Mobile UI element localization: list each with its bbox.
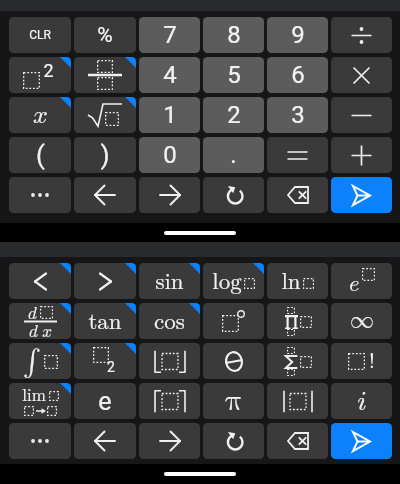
button[interactable]: 9 (267, 17, 328, 53)
staticText: 5 (227, 61, 241, 89)
button[interactable]: Equals (267, 137, 328, 173)
button[interactable]: 7 (139, 17, 200, 53)
button[interactable]: 8 (203, 17, 264, 53)
button[interactable]: Right (139, 177, 200, 213)
button[interactable]: 5 (203, 57, 264, 93)
staticText: 4 (163, 61, 177, 89)
staticText: ∞ (350, 309, 374, 333)
staticText: 6 (291, 61, 305, 89)
staticText: 3 (291, 101, 305, 129)
staticText: 𝑥 (42, 323, 52, 339)
button[interactable]: Fraction (74, 57, 136, 93)
button[interactable]: Integral (9, 343, 71, 379)
staticText: ln (281, 270, 301, 293)
staticText: ∫ (23, 348, 41, 375)
button[interactable]: cos (139, 303, 200, 339)
button[interactable]: Square root (74, 97, 136, 133)
button[interactable]: Backspace (267, 423, 328, 459)
staticText: π (225, 386, 243, 416)
staticText: 9 (291, 21, 305, 49)
button[interactable]: CLR (9, 17, 71, 53)
button[interactable]: sin (139, 263, 200, 299)
button[interactable]: Subscript (74, 343, 136, 379)
staticText: cos (154, 310, 185, 333)
button[interactable]: Send (331, 423, 392, 459)
button[interactable]: Limit (9, 383, 71, 419)
button[interactable]: Undo (203, 177, 264, 213)
button[interactable]: ( (9, 137, 71, 173)
staticText: 𝑒 (349, 273, 360, 295)
staticText: CLR (29, 28, 51, 42)
button[interactable]: Logarithm (203, 263, 264, 299)
staticText: 0 (163, 141, 177, 169)
button[interactable]: Natural log (267, 263, 328, 299)
button[interactable]: . (203, 137, 264, 173)
button[interactable]: More (9, 423, 71, 459)
button[interactable]: 4 (139, 57, 200, 93)
button[interactable]: Floor (139, 343, 200, 379)
button[interactable]: Left (74, 177, 136, 213)
staticText: 2 (227, 101, 241, 129)
staticText: 𝑑 (29, 323, 38, 339)
button[interactable]: Undo (203, 423, 264, 459)
staticText: % (97, 23, 113, 48)
staticText: log (212, 270, 242, 293)
button[interactable]: Ceiling (139, 383, 200, 419)
button[interactable]: 3 (267, 97, 328, 133)
button[interactable]: Square (9, 57, 71, 93)
button[interactable]: e (74, 383, 136, 419)
staticText: 𝑖 (357, 387, 367, 415)
staticText: 𝑥 (33, 102, 48, 128)
button[interactable]: Derivative (9, 303, 71, 339)
button[interactable]: Greater than (74, 263, 136, 299)
button[interactable]: Exponential (331, 263, 392, 299)
button[interactable]: Imaginary unit (331, 383, 392, 419)
button[interactable]: 2 (203, 97, 264, 133)
button[interactable]: Product (267, 303, 328, 339)
staticText: ) (100, 140, 110, 170)
staticText: . (230, 141, 237, 169)
staticText: 8 (227, 21, 241, 49)
button[interactable]: More (9, 177, 71, 213)
button[interactable]: Pi (203, 383, 264, 419)
button[interactable]: Less than (9, 263, 71, 299)
button[interactable]: Left (74, 423, 136, 459)
button[interactable]: Theta (203, 343, 264, 379)
button[interactable]: Variable x (9, 97, 71, 133)
staticText: sin (155, 270, 184, 293)
button[interactable]: tan (74, 303, 136, 339)
staticText: 7 (163, 21, 177, 49)
button[interactable]: Minus (331, 97, 392, 133)
button[interactable]: Factorial (331, 343, 392, 379)
button[interactable]: Sum (267, 343, 328, 379)
button[interactable]: Backspace (267, 177, 328, 213)
staticText: ! (369, 351, 375, 372)
button[interactable]: 1 (139, 97, 200, 133)
staticText: lim (22, 387, 46, 404)
staticText: tan (88, 310, 122, 333)
button[interactable]: Infinity (331, 303, 392, 339)
button[interactable]: % (74, 17, 136, 53)
staticText: 1 (163, 101, 177, 129)
staticText: 𝑑 (28, 305, 37, 322)
button[interactable]: Send (331, 177, 392, 213)
button[interactable]: ) (74, 137, 136, 173)
button[interactable]: Absolute value (267, 383, 328, 419)
staticText: 2 (43, 60, 54, 81)
staticText: 2 (107, 359, 115, 375)
button[interactable]: Plus (331, 137, 392, 173)
button[interactable]: 6 (267, 57, 328, 93)
button[interactable]: Divide (331, 17, 392, 53)
button[interactable]: Multiply (331, 57, 392, 93)
button[interactable]: Right (139, 423, 200, 459)
button[interactable]: 0 (139, 137, 200, 173)
button[interactable]: Degrees (203, 303, 264, 339)
staticText: e (98, 387, 112, 416)
staticText: ( (36, 140, 45, 170)
